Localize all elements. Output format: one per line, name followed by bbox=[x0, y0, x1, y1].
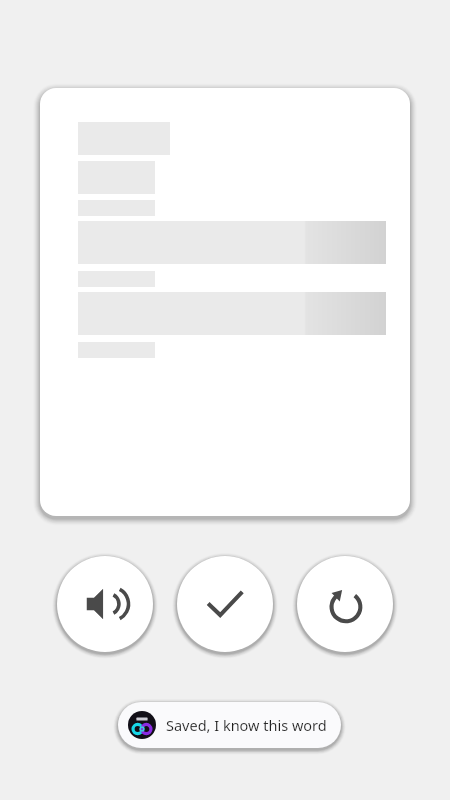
button[interactable]: Saved, I know this word bbox=[118, 702, 341, 748]
button[interactable]: I know this word bbox=[177, 556, 273, 652]
button[interactable]: Repeat bbox=[297, 556, 393, 652]
staticText: Saved, I know this word bbox=[166, 715, 327, 735]
button[interactable] bbox=[40, 88, 410, 516]
button[interactable]: Play pronunciation bbox=[57, 556, 153, 652]
